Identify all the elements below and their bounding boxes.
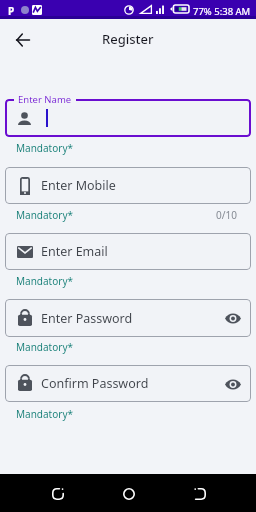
staticText: Mandatory*	[16, 274, 74, 288]
staticText: Enter Email	[41, 243, 108, 260]
staticText: P	[8, 4, 15, 18]
staticText: 77% 5:38 AM	[193, 5, 251, 18]
button[interactable]: Back	[10, 27, 36, 53]
staticText: Enter Password	[41, 310, 133, 327]
button[interactable]: Show password	[223, 374, 243, 394]
staticText: Confirm Password	[41, 375, 149, 392]
staticText: Mandatory*	[16, 340, 74, 354]
staticText: Mandatory*	[16, 141, 74, 155]
button[interactable]: Enter Mobile	[5, 167, 251, 204]
staticText: Mandatory*	[16, 208, 74, 222]
button[interactable]: Show password	[223, 308, 243, 328]
staticText: Enter Name	[18, 93, 72, 106]
button[interactable]: Back	[43, 479, 72, 508]
button[interactable]	[5, 99, 251, 137]
button[interactable]: Confirm Password	[5, 365, 251, 402]
staticText: Enter Mobile	[41, 177, 116, 194]
button[interactable]: Enter Email	[5, 233, 251, 270]
staticText: 0/10	[216, 208, 237, 222]
staticText: Mandatory*	[16, 407, 74, 421]
button[interactable]: Enter Password	[5, 299, 251, 337]
staticText: Register	[102, 30, 154, 48]
button[interactable]: Recent apps	[185, 479, 214, 508]
button[interactable]: Home	[114, 479, 143, 508]
